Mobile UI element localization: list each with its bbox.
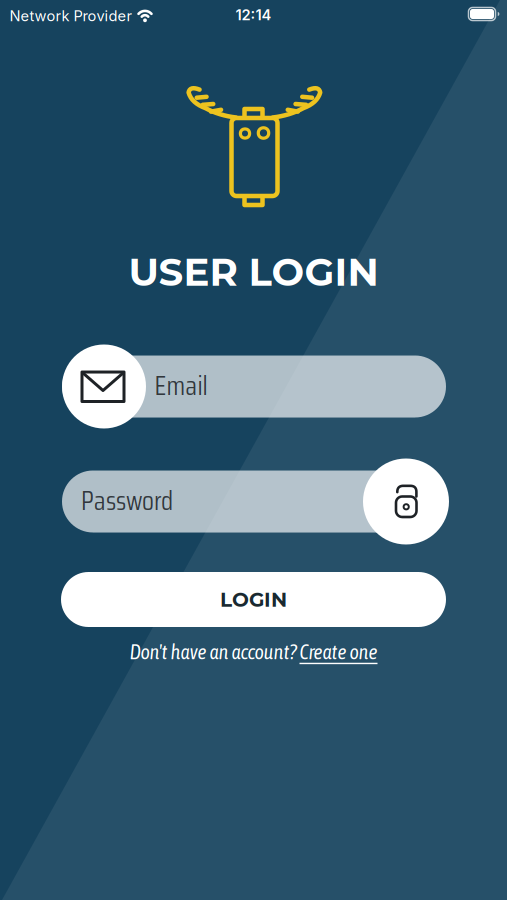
staticText: USER LOGIN <box>128 248 378 295</box>
staticText: LOGIN <box>220 587 287 612</box>
button[interactable]: Password <box>60 458 449 544</box>
staticText: Password <box>81 479 173 522</box>
button[interactable]: Create one <box>299 640 377 663</box>
button[interactable]: Email <box>62 344 446 428</box>
button[interactable]: LOGIN <box>61 572 446 627</box>
staticText: Network Provider <box>9 7 132 25</box>
staticText: Create one <box>299 640 377 663</box>
staticText: Email <box>154 364 207 407</box>
staticText: Don't have an account? <box>129 640 299 663</box>
staticText: 12:14 <box>235 6 271 24</box>
